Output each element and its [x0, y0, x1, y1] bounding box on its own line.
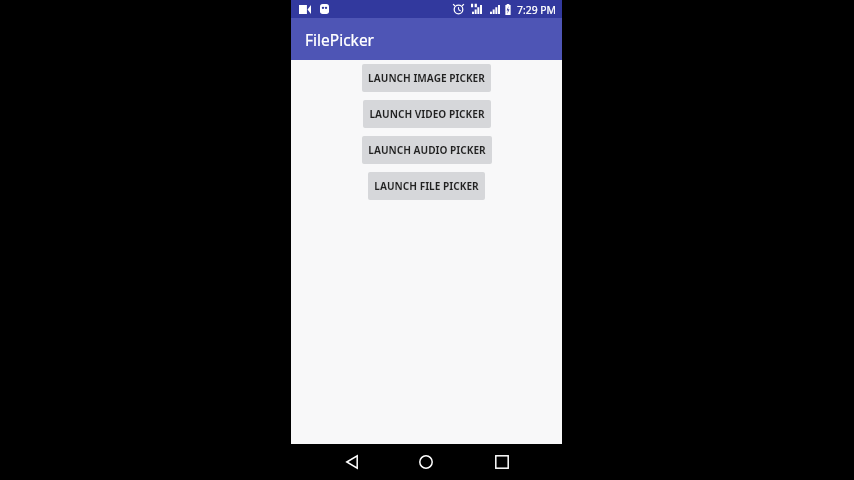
button[interactable]: LAUNCH AUDIO PICKER: [362, 136, 492, 164]
staticText: LAUNCH VIDEO PICKER: [369, 107, 485, 121]
button[interactable]: Recents: [482, 444, 522, 480]
staticText: FilePicker: [305, 29, 375, 50]
button[interactable]: Back: [332, 444, 372, 480]
button[interactable]: LAUNCH FILE PICKER: [368, 172, 485, 200]
staticText: LAUNCH AUDIO PICKER: [368, 143, 486, 157]
staticText: 7:29 PM: [517, 3, 557, 17]
button[interactable]: LAUNCH IMAGE PICKER: [362, 64, 491, 92]
staticText: LAUNCH IMAGE PICKER: [368, 71, 485, 85]
button[interactable]: Home: [406, 444, 446, 480]
staticText: LAUNCH FILE PICKER: [374, 179, 479, 193]
button[interactable]: LAUNCH VIDEO PICKER: [363, 100, 491, 128]
